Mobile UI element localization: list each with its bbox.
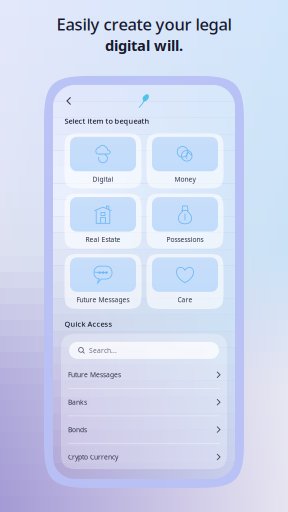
button[interactable]: Possessions [146, 194, 223, 249]
button[interactable]: Bonds [61, 416, 227, 444]
staticText: Bonds [68, 425, 87, 434]
staticText: Money [174, 175, 195, 183]
staticText: Real Estate [85, 235, 120, 244]
button[interactable]: Care [146, 254, 223, 309]
button[interactable]: Back [64, 94, 74, 107]
staticText: Care [177, 295, 192, 304]
staticText: Banks [68, 398, 87, 407]
staticText: Future Messages [76, 295, 129, 304]
button[interactable]: Search... [69, 342, 219, 359]
button[interactable]: Real Estate [64, 194, 141, 249]
staticText: Possessions [166, 235, 203, 244]
button[interactable]: Future Messages [64, 254, 141, 309]
button[interactable]: Money [146, 133, 223, 188]
staticText: Easily create your legal [56, 13, 231, 35]
button[interactable]: Future Messages [61, 361, 227, 389]
button[interactable]: Crypto Currency [61, 444, 227, 470]
button[interactable]: Banks [61, 389, 227, 416]
staticText: Future Messages [68, 370, 121, 379]
button[interactable]: Digital [64, 133, 141, 188]
staticText: Search... [89, 346, 117, 355]
staticText: Quick Access [64, 319, 112, 329]
staticText: Digital [92, 175, 113, 183]
staticText: Select item to bequeath [64, 116, 149, 126]
staticText: Crypto Currency [68, 452, 118, 461]
staticText: digital will. [105, 35, 183, 55]
